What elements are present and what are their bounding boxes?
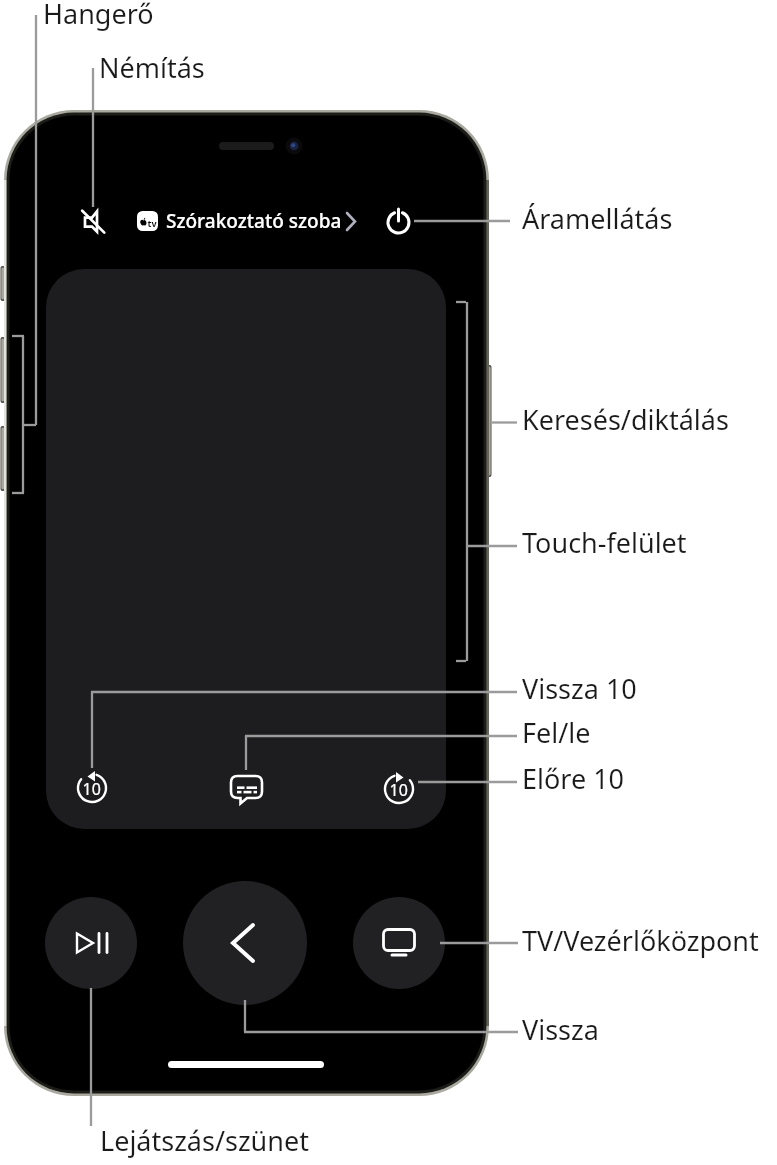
button[interactable]: Némítás xyxy=(70,200,114,244)
button[interactable]: Feliratok xyxy=(224,766,268,810)
button[interactable]: Áramellátás xyxy=(377,200,421,244)
button[interactable]: Szórakoztató szoba xyxy=(130,203,360,241)
button[interactable]: Előre 10 másodperc xyxy=(377,766,421,810)
button[interactable]: TV Vezérlőközpont xyxy=(353,897,445,989)
button[interactable]: Némítás xyxy=(0,0,777,1165)
button[interactable]: Vissza 10 másodperc xyxy=(70,766,114,810)
button[interactable]: Lejátszás szünet xyxy=(45,897,137,989)
button[interactable]: Touch-felület xyxy=(46,268,449,768)
button[interactable]: Vissza xyxy=(183,881,307,1005)
